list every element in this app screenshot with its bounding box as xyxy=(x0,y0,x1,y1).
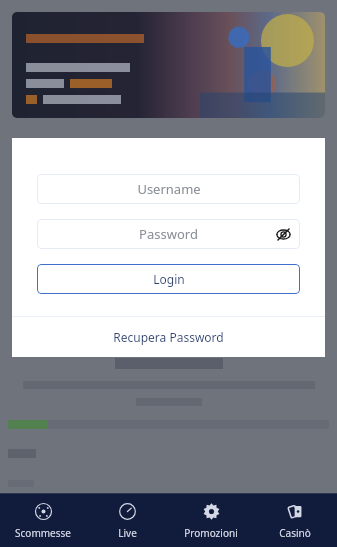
button[interactable]: Username xyxy=(37,174,300,204)
button[interactable]: Live xyxy=(85,494,169,547)
button[interactable]: Show password xyxy=(271,222,295,246)
staticText: Recupera Password xyxy=(113,329,224,345)
button[interactable]: Scommesse xyxy=(0,494,85,547)
button[interactable]: Recupera Password xyxy=(12,317,325,357)
button[interactable]: Password xyxy=(37,219,300,249)
button[interactable]: Login xyxy=(37,264,300,294)
staticText: Scommesse xyxy=(15,526,71,540)
staticText: Username xyxy=(137,180,201,198)
staticText: Casinò xyxy=(279,526,311,540)
button[interactable]: Casinò xyxy=(253,494,337,547)
staticText: Login xyxy=(153,271,185,287)
staticText: Promozioni xyxy=(184,526,238,540)
staticText: Password xyxy=(139,225,198,243)
staticText: Live xyxy=(118,526,137,540)
button[interactable]: Promozioni xyxy=(169,494,253,547)
